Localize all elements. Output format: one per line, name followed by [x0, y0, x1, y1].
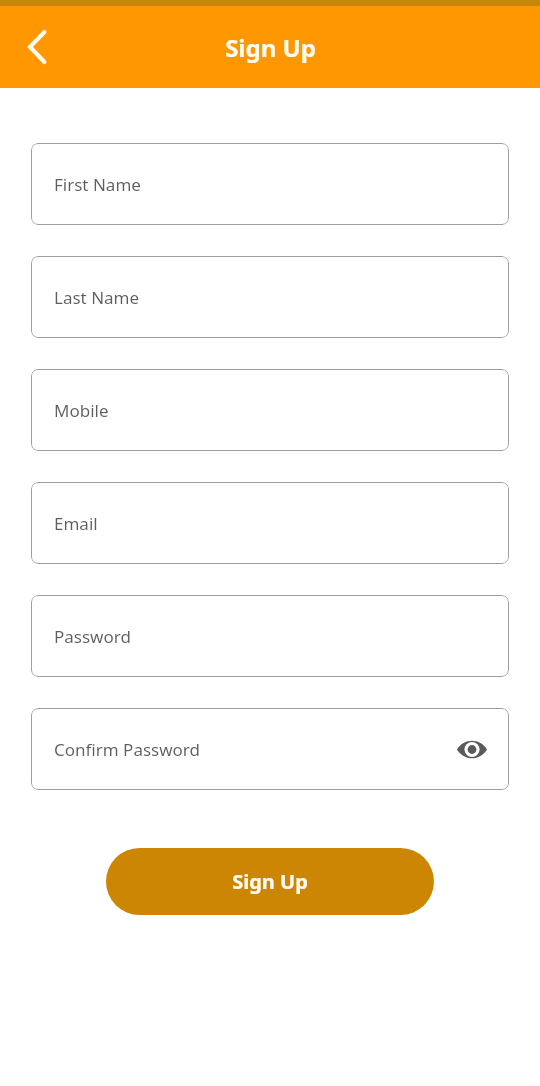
staticText: Password: [54, 625, 131, 648]
staticText: Mobile: [54, 399, 109, 422]
button[interactable]: Password: [31, 595, 509, 677]
button[interactable]: Confirm Password: [31, 708, 509, 790]
staticText: Last Name: [54, 286, 140, 309]
button[interactable]: Back: [16, 25, 60, 69]
staticText: Sign Up: [232, 868, 308, 895]
button[interactable]: Last Name: [31, 256, 509, 338]
button[interactable]: Sign Up: [106, 848, 434, 915]
staticText: Email: [54, 512, 98, 535]
button[interactable]: Show password: [455, 732, 489, 766]
button[interactable]: Email: [31, 482, 509, 564]
button[interactable]: Mobile: [31, 369, 509, 451]
button[interactable]: First Name: [31, 143, 509, 225]
staticText: First Name: [54, 173, 141, 196]
staticText: Confirm Password: [54, 738, 200, 761]
staticText: Sign Up: [225, 31, 316, 64]
